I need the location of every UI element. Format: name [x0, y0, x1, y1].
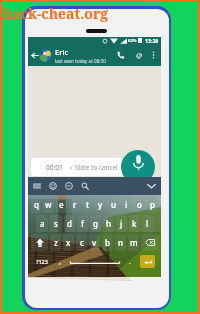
button[interactable]: z: [50, 234, 61, 251]
button[interactable]: o: [134, 196, 145, 213]
staticText: o: [137, 199, 142, 210]
staticText: c: [80, 237, 84, 248]
staticText: .: [129, 257, 131, 267]
button[interactable]: Search: [79, 177, 90, 195]
button[interactable]: Backspace: [141, 234, 158, 251]
staticText: v: [92, 237, 97, 248]
button[interactable]: l: [142, 215, 153, 232]
button[interactable]: ?123: [31, 253, 53, 270]
button[interactable]: s: [50, 215, 62, 232]
button[interactable]: Eric: [39, 44, 117, 66]
button[interactable]: Back: [29, 44, 41, 66]
button[interactable]: k: [129, 215, 140, 232]
button[interactable]: x: [63, 234, 74, 251]
staticText: q: [34, 199, 39, 210]
button[interactable]: n: [115, 234, 126, 251]
staticText: k: [132, 218, 137, 229]
staticText: s: [54, 218, 58, 229]
button[interactable]: Enter: [137, 253, 158, 270]
button[interactable]: ,: [54, 253, 66, 270]
button[interactable]: Voice call: [114, 44, 128, 66]
staticText: x: [66, 237, 71, 248]
button[interactable]: i: [121, 196, 132, 213]
staticText: ‹: [70, 163, 73, 172]
staticText: r: [73, 199, 77, 210]
staticText: z: [54, 237, 58, 248]
staticText: d: [67, 218, 72, 229]
button[interactable]: f: [77, 215, 88, 232]
button[interactable]: q: [31, 196, 41, 213]
button[interactable]: w: [43, 196, 54, 213]
staticText: b: [105, 237, 110, 248]
button[interactable]: Shift: [31, 234, 48, 251]
button[interactable]: r: [69, 196, 80, 213]
staticText: 62%: [128, 38, 137, 44]
staticText: t: [86, 199, 90, 210]
button[interactable]: .: [124, 253, 136, 270]
staticText: Slide to cancel: [75, 163, 118, 172]
button[interactable]: p: [147, 196, 158, 213]
staticText: p: [150, 199, 155, 210]
button[interactable]: y: [95, 196, 106, 213]
button[interactable]: b: [102, 234, 113, 251]
button[interactable]: m: [128, 234, 139, 251]
staticText: w: [45, 199, 52, 210]
staticText: 13:26: [145, 37, 159, 44]
button[interactable]: h: [103, 215, 114, 232]
button[interactable]: Record voice message: [121, 150, 155, 184]
staticText: f: [81, 218, 84, 229]
staticText: ,: [59, 257, 61, 267]
staticText: Eric: [55, 47, 69, 57]
staticText: a: [40, 218, 45, 229]
staticText: i: [125, 199, 128, 210]
staticText: e: [59, 199, 64, 210]
button[interactable]: t: [82, 196, 93, 213]
staticText: g: [93, 218, 98, 229]
button[interactable]: d: [64, 215, 75, 232]
button[interactable]: g: [90, 215, 101, 232]
staticText: ?123: [36, 258, 48, 265]
button[interactable]: Stickers: [63, 177, 74, 195]
button[interactable]: j: [116, 215, 127, 232]
staticText: u: [111, 199, 117, 210]
staticText: j: [120, 218, 123, 229]
button[interactable]: Space: [67, 253, 123, 270]
staticText: n: [118, 237, 124, 248]
button[interactable]: Menu: [31, 177, 42, 195]
staticText: 00:01: [46, 163, 63, 172]
button[interactable]: More options: [148, 44, 158, 66]
button[interactable]: Emoji: [47, 177, 58, 195]
button[interactable]: Hide keyboard: [144, 177, 158, 195]
staticText: l: [146, 218, 149, 229]
button[interactable]: v: [89, 234, 100, 251]
button[interactable]: a: [36, 215, 48, 232]
button[interactable]: 00:01: [31, 158, 123, 176]
staticText: m: [130, 237, 138, 248]
button[interactable]: e: [56, 196, 67, 213]
button[interactable]: c: [76, 234, 87, 251]
button[interactable]: Attach: [131, 44, 145, 66]
staticText: hack-cheat.org: [3, 4, 109, 23]
staticText: h: [106, 218, 112, 229]
button[interactable]: u: [108, 196, 119, 213]
staticText: last seen today at 08:50: [55, 58, 106, 64]
staticText: y: [98, 199, 103, 210]
